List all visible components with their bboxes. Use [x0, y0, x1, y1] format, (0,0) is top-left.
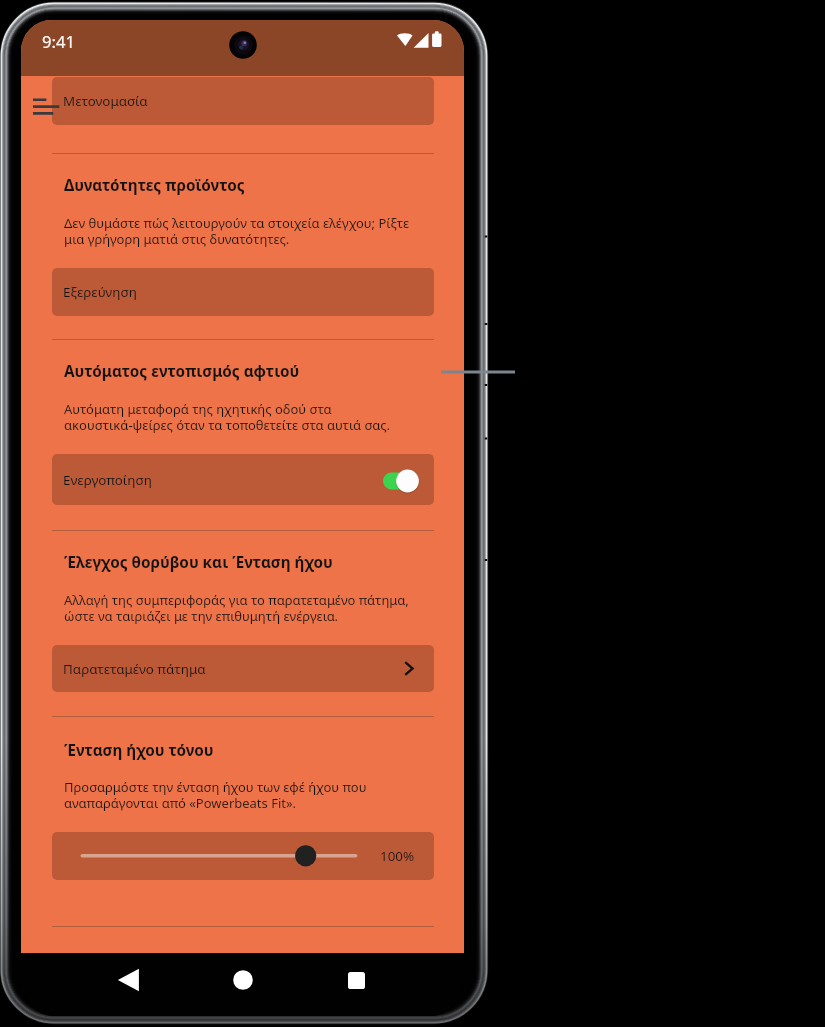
staticText: Παρατεταμένο πάτημα	[63, 660, 206, 678]
staticText: 9:41	[42, 30, 75, 53]
staticText: Αυτόματη μεταφορά της ηχητικής οδού στα …	[64, 400, 391, 434]
staticText: 100%	[380, 847, 415, 865]
button[interactable]: Μετονομασία	[52, 77, 434, 125]
staticText: Εξερεύνηση	[63, 283, 137, 301]
staticText: Δεν θυμάστε πώς λειτουργούν τα στοιχεία …	[64, 214, 409, 248]
staticText: Μετονομασία	[63, 92, 148, 110]
staticText: Αλλαγή της συμπεριφοράς για το παρατεταμ…	[64, 591, 409, 625]
staticText: Αυτόματος εντοπισμός αφτιού	[64, 361, 300, 382]
button[interactable]: 100%	[52, 832, 434, 880]
staticText: Έλεγχος θορύβου και Ένταση ήχου	[64, 552, 333, 573]
staticText: Ένταση ήχου τόνου	[64, 740, 214, 761]
button[interactable]: Sort	[33, 95, 60, 119]
staticText: Δυνατότητες προϊόντος	[64, 175, 245, 196]
staticText: Προσαρμόστε την ένταση ήχου των εφέ ήχου…	[64, 778, 367, 812]
button[interactable]: Εξερεύνηση	[52, 268, 434, 316]
button[interactable]: Παρατεταμένο πάτημα	[52, 645, 434, 692]
button[interactable]: Ενεργοποίηση	[52, 454, 434, 505]
staticText: Ενεργοποίηση	[63, 471, 152, 489]
button[interactable]: Recents	[336, 960, 376, 1000]
button[interactable]: Back	[109, 960, 149, 1000]
button[interactable]: Home	[223, 960, 263, 1000]
